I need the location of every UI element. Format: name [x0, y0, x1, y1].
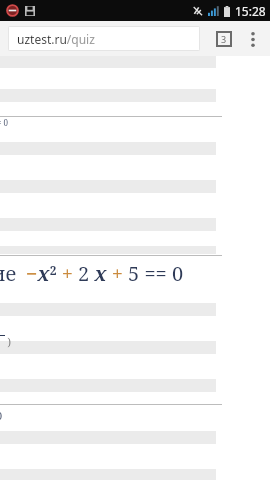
staticText: −x2 + 2 x + 5 == 0 — [26, 260, 184, 287]
staticText: ие — [0, 260, 17, 287]
staticText: ) — [5, 335, 12, 349]
staticText: 6 — [0, 336, 1, 348]
staticText: 0 — [0, 408, 3, 423]
button[interactable]: uztest.ru/quiz — [8, 26, 200, 51]
staticText: uztest.ru/quiz — [17, 31, 95, 47]
staticText: 15:28 — [235, 3, 266, 19]
button[interactable]: More options — [240, 26, 266, 52]
button[interactable]: Tabs, 3 open — [212, 27, 236, 51]
staticText: 3 — [221, 33, 227, 45]
staticText: = 0 — [0, 117, 9, 128]
